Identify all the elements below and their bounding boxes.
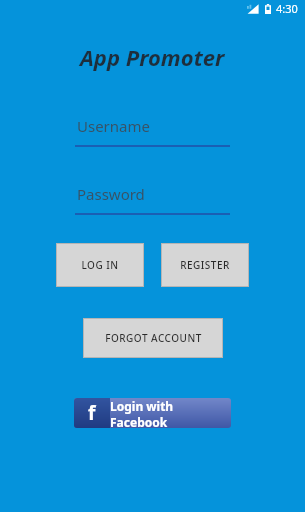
staticText: REGISTER — [180, 258, 230, 272]
other: Facebook — [74, 398, 110, 428]
button[interactable]: REGISTER — [162, 244, 248, 286]
staticText: Login with Facebook — [110, 398, 231, 428]
staticText: Password — [77, 184, 145, 204]
staticText: FORGOT ACCOUNT — [105, 331, 202, 345]
button[interactable]: Facebook — [74, 398, 231, 428]
staticText: App Promoter — [80, 42, 225, 72]
button[interactable]: LOG IN — [57, 244, 143, 286]
staticText: 4:30 — [276, 1, 298, 16]
staticText: f — [88, 400, 96, 426]
button[interactable]: FORGOT ACCOUNT — [84, 319, 222, 357]
staticText: Username — [77, 116, 150, 136]
button[interactable]: Username — [75, 116, 230, 147]
staticText: LOG IN — [81, 258, 119, 272]
button[interactable]: Password — [75, 184, 230, 215]
